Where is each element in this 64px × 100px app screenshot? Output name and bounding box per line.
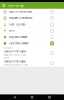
staticText: Required Device Code [4, 53, 26, 56]
button[interactable]: Auto Update [0, 21, 64, 27]
button[interactable]: Device Point Name [0, 60, 64, 66]
button[interactable]: Recent apps [47, 94, 52, 100]
button[interactable]: Factory Phone Reset [0, 9, 64, 15]
staticText: Enterprise Device Code [4, 63, 28, 66]
button[interactable]: Home [29, 94, 35, 100]
staticText: Auto Update [9, 23, 25, 26]
staticText: Request Credentials [9, 17, 32, 20]
button[interactable]: Migrate Licences [0, 34, 64, 40]
button[interactable]: Approve Licences [0, 40, 64, 46]
staticText: Device Settings [8, 4, 24, 7]
button[interactable]: Device Point Name [0, 50, 64, 56]
button[interactable]: Request Credentials [0, 15, 64, 21]
staticText: Network [4, 47, 13, 49]
staticText: Approve Licences [9, 42, 28, 45]
button[interactable]: Back [12, 94, 17, 100]
staticText: Wi-Fi [9, 29, 15, 32]
staticText: Device Point Name [4, 50, 26, 53]
staticText: Migrate Licences [9, 36, 27, 39]
button[interactable]: Wi-Fi [0, 28, 64, 34]
staticText: Device Point Name [4, 60, 26, 63]
staticText: Server [4, 57, 10, 59]
staticText: Factory Phone Reset [9, 10, 32, 13]
button[interactable]: Menu [0, 2, 8, 9]
